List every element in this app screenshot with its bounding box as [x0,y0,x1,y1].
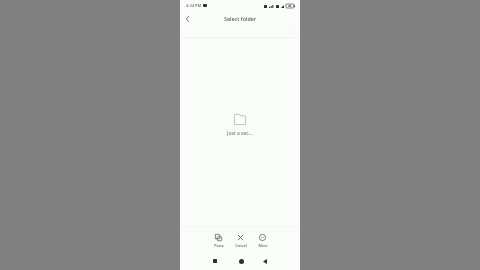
staticText: 4:34 PM [186,3,202,8]
button[interactable]: Home [235,255,247,267]
button[interactable]: Paste [209,233,228,249]
staticText: Cancel [235,243,247,248]
button[interactable]: Cancel [231,233,250,249]
staticText: Paste [214,243,224,248]
staticText: Just a sec... [227,130,253,137]
button[interactable]: More [253,233,272,249]
button[interactable]: Navigate up [183,14,192,23]
button[interactable]: Recents [209,255,221,267]
staticText: Select folder [224,15,257,22]
staticText: More [258,243,268,248]
button[interactable]: Back [259,255,271,267]
